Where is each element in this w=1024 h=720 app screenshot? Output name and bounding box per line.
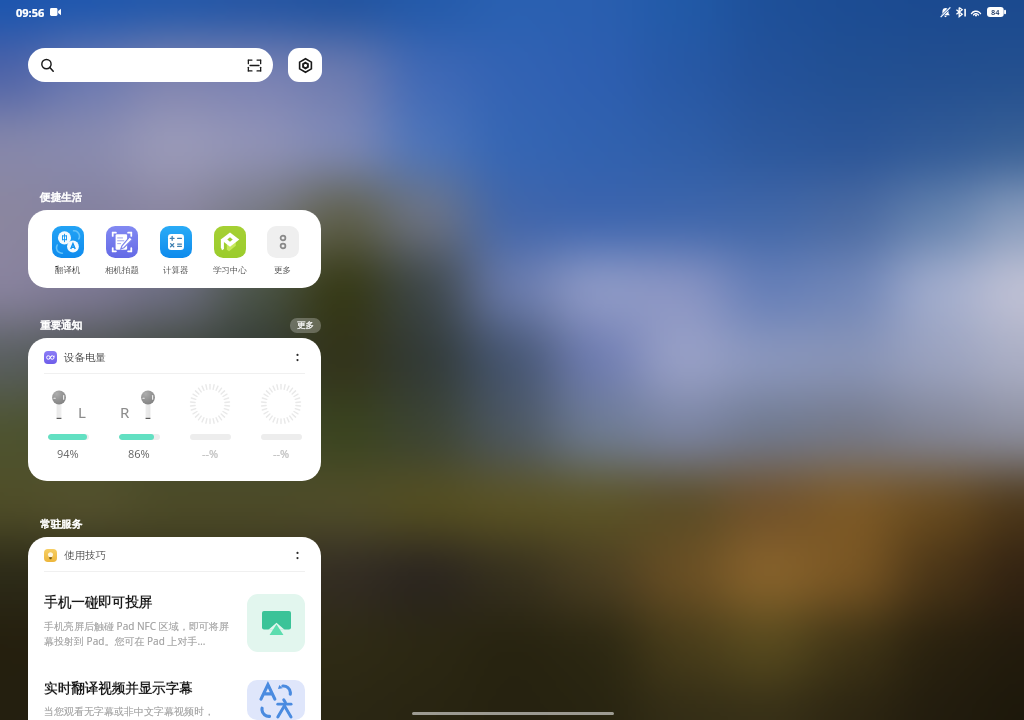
button[interactable]: 学习中心 (203, 226, 257, 276)
staticText: 学习中心 (213, 265, 247, 276)
button[interactable]: 设备电量 (28, 338, 321, 481)
other: Search (40, 58, 55, 73)
button[interactable]: Settings (288, 48, 322, 82)
button[interactable]: More options (289, 547, 305, 563)
staticText: 使用技巧 (64, 549, 106, 562)
staticText: 常驻服务 (40, 518, 82, 531)
staticText: --% (202, 446, 219, 461)
button[interactable]: 计算器 (149, 226, 203, 276)
staticText: 相机拍题 (105, 265, 139, 276)
staticText: 重要通知 (40, 319, 82, 332)
staticText: 手机一碰即可投屏 (44, 594, 152, 611)
staticText: 86% (128, 446, 150, 461)
staticText: 手机亮屏后触碰 Pad NFC 区域，即可将屏幕投射到 Pad。您可在 Pad … (44, 619, 230, 648)
staticText: 实时翻译视频并显示字幕 (44, 680, 193, 697)
button[interactable]: 手机一碰即可投屏 (28, 572, 321, 652)
staticText: 84 (991, 7, 1000, 17)
button[interactable]: 翻译机 (28, 210, 321, 288)
button[interactable]: Search (28, 48, 273, 82)
button[interactable]: 实时翻译视频并显示字幕 (28, 652, 321, 720)
staticText: 翻译机 (55, 265, 81, 276)
button[interactable]: 翻译机 (41, 226, 95, 276)
button[interactable]: More options (289, 349, 305, 365)
button[interactable]: 更多 (257, 226, 308, 276)
staticText: 计算器 (163, 265, 189, 276)
staticText: 便捷生活 (40, 191, 82, 204)
other: Scan code (247, 58, 262, 73)
staticText: L (78, 402, 86, 422)
staticText: R (120, 402, 130, 422)
staticText: 09:56 (16, 5, 45, 20)
staticText: 94% (57, 446, 79, 461)
staticText: 当您观看无字幕或非中文字幕视频时， (44, 705, 214, 718)
staticText: 设备电量 (64, 351, 106, 364)
staticText: 更多 (274, 265, 291, 276)
staticText: 更多 (297, 320, 314, 331)
button[interactable]: 相机拍题 (95, 226, 149, 276)
button[interactable]: 更多 (290, 318, 321, 333)
staticText: --% (273, 446, 290, 461)
